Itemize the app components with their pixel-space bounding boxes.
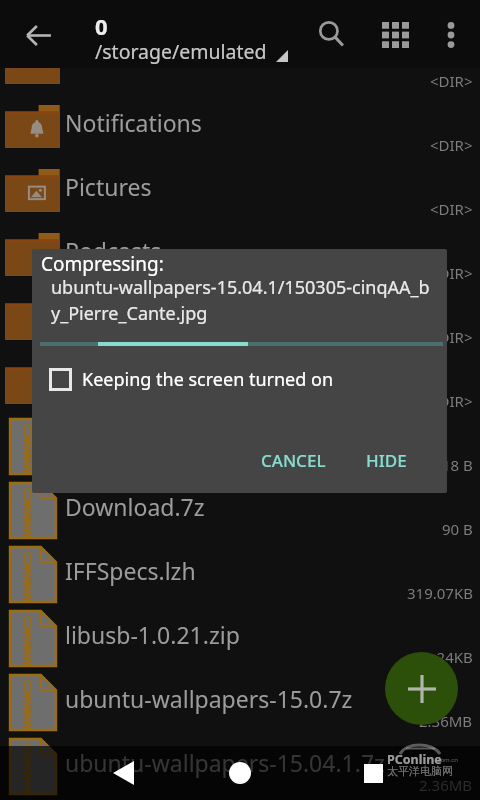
staticText: HIDE <box>366 449 407 472</box>
staticText: 18 B <box>442 455 473 475</box>
button[interactable]: Recents <box>345 746 401 800</box>
button[interactable]: tmp <box>0 351 480 415</box>
staticText: /storage/emulated <box>95 38 267 65</box>
staticText: <DIR> <box>430 391 473 411</box>
staticText: <DIR> <box>430 199 473 219</box>
button[interactable]: Back <box>14 11 62 59</box>
staticText: 2.36MB <box>419 775 473 795</box>
staticText: Movies <box>65 43 141 74</box>
button[interactable]: ubuntu-wallpapers-15.0.7z <box>0 671 480 735</box>
button[interactable]: Pictures <box>0 159 480 223</box>
button[interactable]: Grid view <box>372 12 418 58</box>
button[interactable]: Add <box>385 652 458 725</box>
staticText: ubuntu-wallpapers-15.04.1.7z <box>65 747 385 778</box>
staticText: Pictures <box>65 171 152 202</box>
button[interactable]: Podcasts <box>0 223 480 287</box>
staticText: 太平洋电脑网 <box>387 764 453 778</box>
staticText: tmp <box>65 363 109 394</box>
button[interactable]: Search <box>309 11 355 57</box>
staticText: PConline <box>387 751 442 768</box>
staticText: ubuntu-wallpapers-15.04.1/150305-cinqAA_… <box>51 275 430 326</box>
button[interactable]: HIDE <box>353 440 420 481</box>
button[interactable]: Ringtones <box>0 287 480 351</box>
staticText: .com.cn <box>436 756 458 764</box>
button[interactable]: Home <box>212 746 268 800</box>
staticText: CANCEL <box>261 449 326 472</box>
staticText: Notifications <box>65 107 202 138</box>
staticText: Podcasts <box>65 235 162 266</box>
staticText: Keeping the screen turned on <box>82 367 334 392</box>
button[interactable]: Alarms.7z <box>0 415 480 479</box>
button[interactable]: Keeping the screen turned on <box>49 367 340 392</box>
button[interactable]: Back <box>95 746 151 800</box>
button[interactable]: Download.7z <box>0 479 480 543</box>
staticText: Download.7z <box>65 491 205 522</box>
button[interactable]: CANCEL <box>248 440 339 481</box>
button[interactable]: Movies <box>0 31 480 95</box>
staticText: libusb-1.0.21.zip <box>65 619 240 650</box>
staticText: 2.36MB <box>419 711 473 731</box>
button[interactable]: IFFSpecs.lzh <box>0 543 480 607</box>
staticText: IFFSpecs.lzh <box>65 555 196 586</box>
staticText: Ringtones <box>65 299 175 330</box>
button[interactable]: More options <box>428 12 474 58</box>
staticText: Compressing: <box>41 251 164 277</box>
staticText: <DIR> <box>430 263 473 283</box>
button[interactable]: Notifications <box>0 95 480 159</box>
staticText: 1.24KB <box>424 647 473 667</box>
staticText: 0 <box>95 11 108 41</box>
staticText: 90 B <box>442 519 473 539</box>
staticText: <DIR> <box>430 135 473 155</box>
button[interactable]: libusb-1.0.21.zip <box>0 607 480 671</box>
button[interactable]: ubuntu-wallpapers-15.04.1.7z <box>0 735 480 799</box>
staticText: ubuntu-wallpapers-15.0.7z <box>65 683 353 714</box>
staticText: <DIR> <box>430 71 473 91</box>
staticText: <DIR> <box>430 327 473 347</box>
staticText: 319.07KB <box>407 583 473 603</box>
